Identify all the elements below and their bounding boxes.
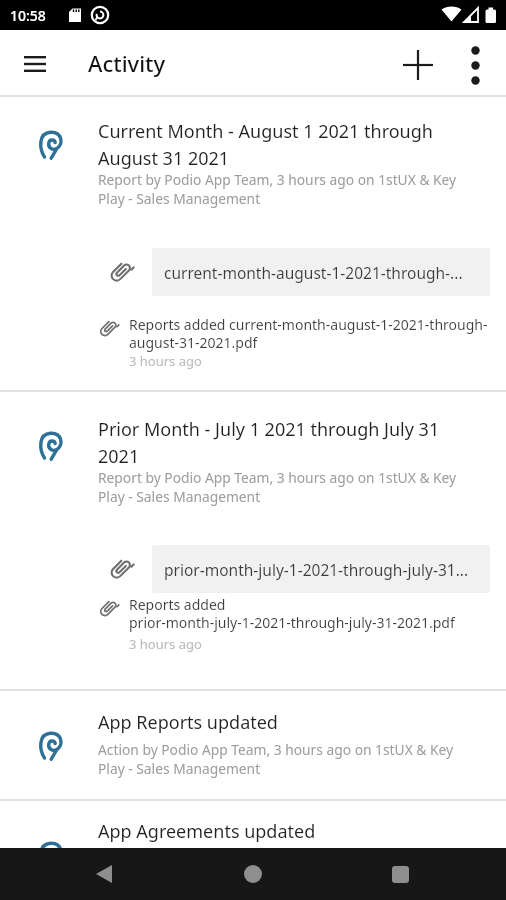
button[interactable] (0, 391, 506, 689)
staticText: App Agreements updated (98, 819, 488, 844)
staticText: Report by Podio App Team, 3 hours ago on… (98, 170, 478, 208)
button[interactable] (376, 850, 424, 898)
staticText: Reports added current-month-august-1-202… (129, 315, 499, 352)
staticText: prior-month-july-1-2021-through-july-31.… (164, 559, 469, 580)
button[interactable] (0, 690, 506, 799)
staticText: 3 hours ago (129, 352, 202, 370)
button[interactable]: prior-month-july-1-2021-through-july-31.… (152, 545, 490, 593)
staticText: Report by Podio App Team, 3 hours ago on… (98, 468, 478, 506)
button[interactable] (13, 42, 57, 86)
staticText: Activity (88, 48, 166, 78)
staticText: current-month-august-1-2021-through-... (164, 262, 463, 283)
button[interactable] (396, 43, 440, 87)
button[interactable] (0, 97, 506, 390)
staticText (98, 847, 478, 866)
staticText: Action by Podio App Team, 3 hours ago on… (98, 740, 478, 778)
button[interactable] (455, 45, 495, 85)
staticText: 10:58 (10, 6, 46, 25)
staticText: App Reports updated (98, 710, 488, 735)
staticText: Current Month - August 1 2021 through Au… (98, 119, 488, 170)
button[interactable] (80, 850, 128, 898)
staticText: 3 hours ago (129, 635, 202, 653)
button[interactable] (0, 800, 506, 848)
button[interactable]: current-month-august-1-2021-through-... (152, 248, 490, 296)
staticText: Prior Month - July 1 2021 through July 3… (98, 417, 488, 468)
staticText: Reports added prior-month-july-1-2021-th… (129, 595, 499, 632)
button[interactable] (229, 850, 277, 898)
